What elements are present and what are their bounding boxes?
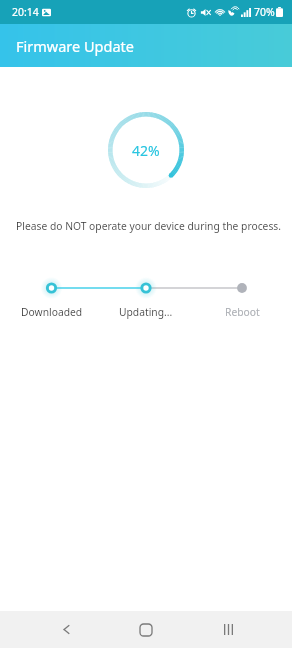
- staticText: Please do NOT operate your device during…: [16, 219, 292, 233]
- button[interactable]: Downloaded: [18, 302, 86, 322]
- staticText: 70%: [254, 5, 275, 19]
- staticText: Downloaded: [21, 305, 83, 319]
- staticText: 42%: [132, 141, 160, 160]
- button[interactable]: Home: [126, 611, 166, 648]
- button[interactable]: Recent apps: [208, 611, 248, 648]
- button[interactable]: Reboot: [208, 302, 276, 322]
- staticText: Firmware Update: [16, 36, 134, 56]
- button[interactable]: Back: [46, 611, 86, 648]
- staticText: Updating...: [119, 305, 173, 319]
- button[interactable]: Updating...: [112, 302, 180, 322]
- staticText: Reboot: [225, 305, 260, 319]
- staticText: 20:14: [12, 5, 39, 19]
